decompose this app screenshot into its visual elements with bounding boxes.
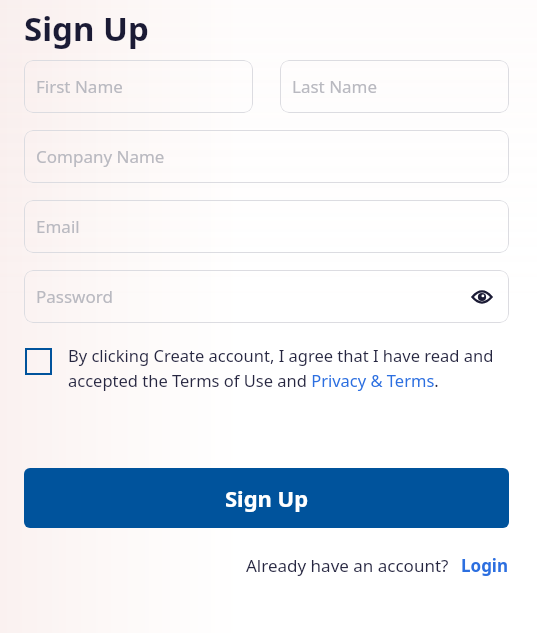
staticText: Sign Up	[24, 6, 149, 51]
staticText: First Name	[36, 75, 123, 98]
staticText: By clicking Create account, I agree that…	[68, 344, 509, 392]
staticText: Email	[36, 215, 80, 238]
staticText: Already have an account?	[246, 554, 449, 577]
button[interactable]: Accept terms checkbox	[25, 344, 509, 392]
staticText: Sign Up	[225, 483, 309, 513]
staticText: Login	[461, 554, 509, 577]
button[interactable]: Sign Up	[24, 468, 509, 528]
staticText: Company Name	[36, 145, 165, 168]
staticText: Password	[36, 285, 113, 308]
button[interactable]: Password	[24, 270, 509, 323]
button[interactable]: Login	[461, 554, 509, 577]
button[interactable]: First Name	[24, 60, 253, 113]
button[interactable]: Email	[24, 200, 509, 253]
button[interactable]: Last Name	[280, 60, 509, 113]
button[interactable]: Show password	[469, 284, 495, 310]
staticText: Last Name	[292, 75, 378, 98]
other: Accept terms checkbox	[25, 348, 52, 375]
button[interactable]: Company Name	[24, 130, 509, 183]
